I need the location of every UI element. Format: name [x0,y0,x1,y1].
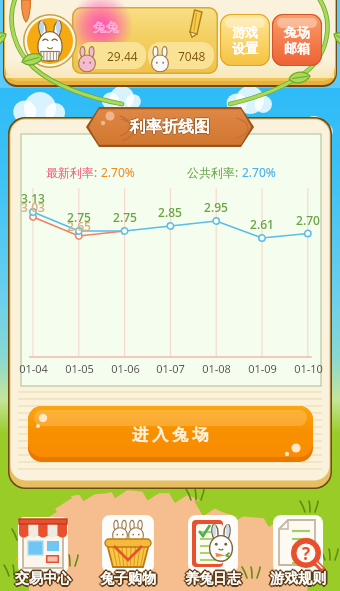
staticText: 兔子购物 [101,570,157,588]
staticText: 兔子购物 [99,570,155,588]
staticText: 养兔日志 [185,568,241,586]
staticText: 2.95 [204,199,228,215]
staticText: 游戏规则 [271,569,327,587]
staticText: 游戏规则 [270,572,326,590]
staticText: 3.13 [21,190,45,206]
staticText: 2.75 [113,209,137,225]
staticText: 游戏规则 [270,569,326,587]
staticText: 交易中心 [15,571,71,589]
staticText: 兔子购物 [98,570,154,588]
staticText: 交易中心 [15,569,71,587]
staticText: 2.70% [101,164,135,180]
staticText: 游戏规则 [269,569,325,587]
staticText: 交易中心 [15,570,71,588]
staticText: 利率折线图 [129,117,209,137]
staticText: 交易中心 [17,570,73,588]
staticText: 养兔日志 [184,569,240,587]
staticText: 交易中心 [14,571,70,589]
staticText: 利率折线图 [130,117,210,137]
staticText: 邮箱 [284,40,310,56]
staticText: 游戏规则 [269,570,325,588]
staticText: 2.65 [67,218,91,234]
staticText: 2.70% [242,164,276,180]
staticText: 兔子购物 [101,569,157,587]
staticText: 利率折线图 [131,117,211,137]
staticText: 兔子购物 [100,571,156,589]
button[interactable]: 游戏 [220,14,270,66]
staticText: 养兔日志 [186,569,242,587]
button[interactable]: ? [255,505,340,591]
staticText: 养兔日志 [187,570,243,588]
button[interactable]: 养兔日志 [170,505,255,591]
staticText: 游戏规则 [271,571,327,589]
staticText: 兔子购物 [99,569,155,587]
staticText: 最新利率: [46,164,101,180]
staticText: 01-04 [19,361,48,376]
staticText: 29.44 [107,48,138,64]
staticText: 养兔日志 [185,572,241,590]
staticText: 兔兔 [93,19,119,35]
staticText: 游戏规则 [270,570,326,588]
staticText: 养兔日志 [184,570,240,588]
staticText: 交易中心 [14,569,70,587]
staticText: 兔子购物 [99,571,155,589]
staticText: 养兔日志 [185,570,241,588]
staticText: 游戏 [232,24,258,40]
staticText: 养兔日志 [185,571,241,589]
staticText: 兔子购物 [101,571,157,589]
button[interactable]: 交易中心 [0,505,85,591]
staticText: 2.85 [158,204,182,220]
staticText: 3.03 [21,199,45,215]
staticText: 利率折线图 [130,118,210,138]
staticText: 交易中心 [16,569,72,587]
staticText: 设置 [232,40,258,56]
staticText: 兔子购物 [100,570,156,588]
staticText: 兔子购物 [100,568,156,586]
staticText: 7048 [178,48,206,64]
staticText: 01-09 [248,361,277,376]
staticText: 游戏规则 [269,571,325,589]
staticText: 交易中心 [16,571,72,589]
staticText: 01-08 [202,361,231,376]
staticText: 养兔日志 [184,571,240,589]
staticText: 01-07 [156,361,185,376]
button[interactable]: 兔子购物 [85,505,170,591]
staticText: 01-06 [111,361,140,376]
staticText: 游戏规则 [270,568,326,586]
staticText: 交易中心 [14,570,70,588]
staticText: 养兔日志 [186,570,242,588]
staticText: 01-10 [294,361,323,376]
staticText: 进 入 兔 场 [132,423,209,445]
staticText: 养兔日志 [185,569,241,587]
staticText: 兔子购物 [100,572,156,590]
button[interactable]: 兔场 [272,14,322,66]
staticText: 01-05 [65,361,94,376]
staticText: 兔子购物 [102,570,158,588]
staticText: 2.70 [296,212,320,228]
staticText: 交易中心 [13,570,69,588]
staticText: 交易中心 [15,572,71,590]
staticText: 游戏规则 [271,570,327,588]
staticText: 养兔日志 [186,571,242,589]
staticText: 游戏规则 [270,571,326,589]
staticText: ? [302,542,311,562]
staticText: 交易中心 [15,568,71,586]
staticText: 游戏规则 [272,570,328,588]
staticText: 养兔日志 [183,570,239,588]
staticText: 利率折线图 [130,116,210,136]
staticText: 公共利率: [187,164,242,180]
staticText: 游戏规则 [268,570,324,588]
button[interactable]: 进 入 兔 场 [28,406,313,462]
staticText: 2.61 [250,216,274,232]
staticText: 兔场 [284,24,310,40]
staticText: 交易中心 [16,570,72,588]
staticText: 兔子购物 [100,569,156,587]
staticText: 2.75 [67,209,91,225]
